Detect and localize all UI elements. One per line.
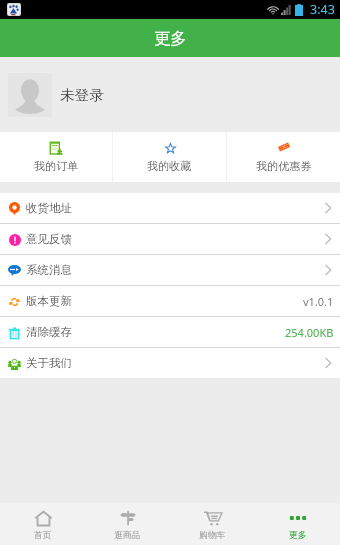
staticText: 系统消息 bbox=[26, 263, 72, 277]
staticText: 购物车 bbox=[199, 530, 226, 541]
button[interactable]: 我的订单 bbox=[0, 132, 112, 182]
button[interactable]: 我的收藏 bbox=[113, 132, 226, 182]
staticText: 首页 bbox=[34, 530, 52, 541]
button[interactable]: 收货地址 bbox=[0, 193, 340, 223]
staticText: v1.0.1 bbox=[303, 294, 334, 309]
button[interactable]: 逛商品 bbox=[85, 503, 170, 545]
staticText: 未登录 bbox=[60, 86, 104, 104]
button[interactable]: 版本更新 bbox=[0, 286, 340, 316]
staticText: 我的订单 bbox=[34, 159, 79, 173]
staticText: 254.00KB bbox=[285, 325, 334, 340]
button[interactable]: 更多 bbox=[255, 503, 340, 545]
staticText: 收货地址 bbox=[26, 201, 72, 215]
staticText: 逛商品 bbox=[114, 530, 141, 541]
button[interactable]: 关于我们 bbox=[0, 348, 340, 378]
button[interactable]: 购物车 bbox=[170, 503, 255, 545]
staticText: 我的优惠券 bbox=[256, 159, 312, 173]
button[interactable]: 清除缓存 bbox=[0, 317, 340, 347]
staticText: 版本更新 bbox=[26, 294, 72, 308]
button[interactable]: 意见反馈 bbox=[0, 224, 340, 254]
button[interactable]: 首页 bbox=[0, 503, 85, 545]
button[interactable]: 我的优惠券 bbox=[227, 132, 340, 182]
button[interactable]: 未登录 bbox=[0, 57, 340, 132]
staticText: 3:43 bbox=[310, 1, 335, 18]
staticText: 清除缓存 bbox=[26, 325, 72, 339]
staticText: 意见反馈 bbox=[26, 232, 72, 246]
staticText: 关于我们 bbox=[26, 356, 72, 370]
staticText: 更多 bbox=[289, 530, 307, 541]
staticText: 我的收藏 bbox=[147, 159, 192, 173]
button[interactable]: 系统消息 bbox=[0, 255, 340, 285]
staticText: 更多 bbox=[154, 28, 187, 49]
